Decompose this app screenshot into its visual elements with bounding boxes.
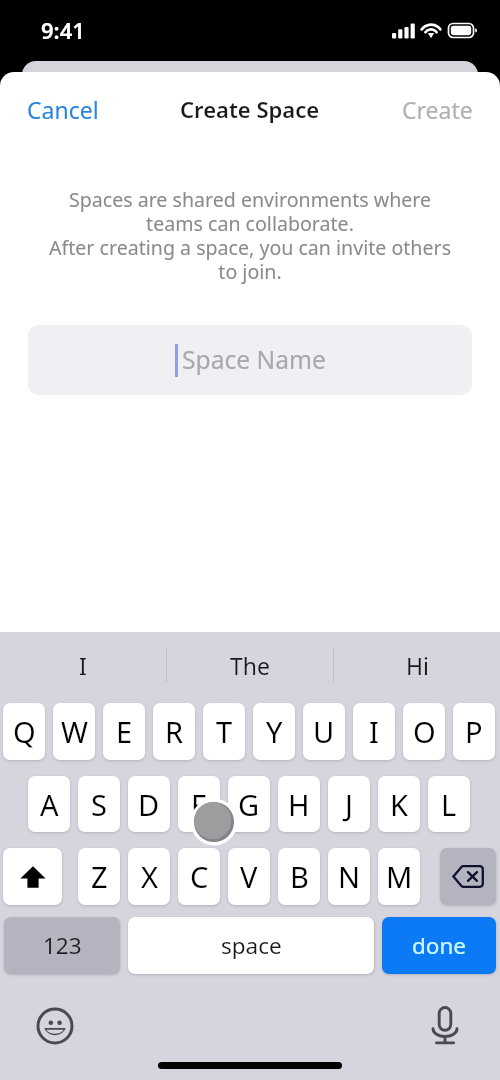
button[interactable]: space [128, 917, 374, 974]
staticText: Q [13, 712, 36, 751]
button[interactable]: Hi [334, 632, 500, 698]
staticText: F [191, 785, 207, 824]
staticText: K [390, 785, 408, 824]
button[interactable]: Shift [3, 848, 62, 905]
staticText: Spaces are shared environments where tea… [4, 186, 496, 284]
staticText: space [221, 930, 282, 961]
staticText: Cancel [27, 94, 99, 125]
staticText: 123 [43, 930, 82, 961]
staticText: E [116, 712, 133, 751]
button[interactable]: D [128, 776, 170, 832]
button[interactable]: Backspace [440, 848, 496, 905]
staticText: X [141, 857, 158, 896]
staticText: M [386, 857, 413, 896]
staticText: U [313, 712, 335, 751]
button[interactable]: done [382, 917, 496, 974]
staticText: Y [266, 712, 283, 751]
staticText: N [338, 857, 361, 896]
button[interactable]: X [128, 848, 170, 905]
staticText: O [413, 712, 436, 751]
button[interactable]: Cancel [16, 86, 110, 133]
staticText: A [40, 785, 59, 824]
button[interactable]: R [153, 703, 195, 760]
button[interactable]: W [53, 703, 95, 760]
staticText: done [412, 930, 467, 961]
button[interactable]: C [178, 848, 220, 905]
staticText: Create Space [180, 94, 320, 124]
button[interactable]: K [378, 776, 420, 832]
button[interactable]: A [28, 776, 70, 832]
button[interactable]: G [228, 776, 270, 832]
button[interactable]: Y [253, 703, 295, 760]
staticText: B [290, 857, 309, 896]
button[interactable]: F [178, 776, 220, 832]
button[interactable]: L [428, 776, 470, 832]
button[interactable]: I [0, 632, 166, 698]
staticText: Z [91, 857, 108, 896]
button[interactable]: I [353, 703, 395, 760]
button[interactable]: T [203, 703, 245, 760]
staticText: S [91, 785, 107, 824]
button[interactable]: Q [3, 703, 45, 760]
button[interactable]: Emoji keyboard [33, 1004, 77, 1048]
button[interactable]: P [453, 703, 495, 760]
staticText: 9:41 [41, 15, 85, 45]
staticText: J [345, 785, 353, 824]
button[interactable]: B [278, 848, 320, 905]
staticText: G [238, 785, 260, 824]
staticText: Space Name [182, 343, 326, 377]
button[interactable]: E [103, 703, 145, 760]
staticText: Create [402, 94, 473, 125]
button[interactable]: U [303, 703, 345, 760]
button[interactable]: S [78, 776, 120, 832]
staticText: H [288, 785, 310, 824]
staticText: D [138, 785, 160, 824]
button[interactable]: Space Name [28, 325, 472, 395]
staticText: Hi [406, 650, 429, 681]
staticText: The [230, 650, 270, 681]
button[interactable]: N [328, 848, 370, 905]
staticText: V [240, 857, 258, 896]
button[interactable]: M [378, 848, 420, 905]
button[interactable]: The [167, 632, 333, 698]
staticText: P [465, 712, 483, 751]
staticText: I [369, 712, 379, 751]
button[interactable]: J [328, 776, 370, 832]
button[interactable]: O [403, 703, 445, 760]
button[interactable]: H [278, 776, 320, 832]
staticText: C [190, 857, 209, 896]
button[interactable]: Dictation [423, 1004, 467, 1048]
staticText: R [165, 712, 184, 751]
staticText: T [216, 712, 233, 751]
staticText: W [61, 712, 88, 751]
staticText: L [441, 785, 457, 824]
button[interactable]: Create [391, 86, 484, 133]
staticText: I [79, 650, 87, 681]
button[interactable]: 123 [4, 917, 120, 974]
button[interactable]: V [228, 848, 270, 905]
button[interactable]: Z [78, 848, 120, 905]
